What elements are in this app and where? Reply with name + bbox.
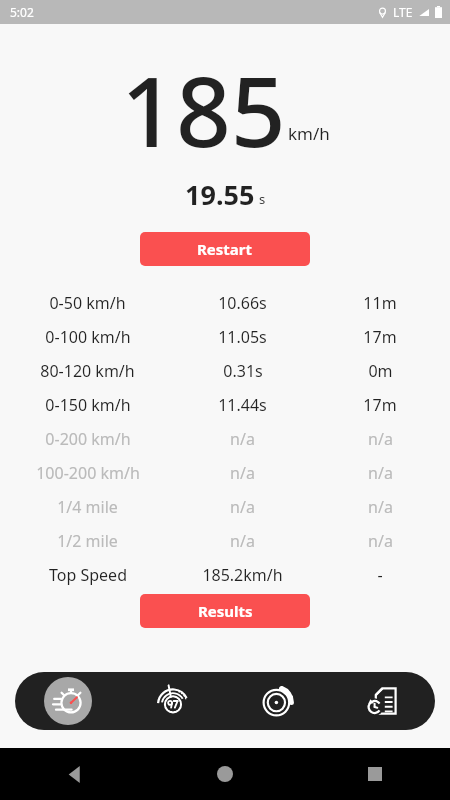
staticText: 17m	[363, 394, 397, 416]
button[interactable]: 0-100 km/h	[0, 320, 450, 354]
button[interactable]: 0-50 km/h	[0, 286, 450, 320]
staticText: 100-200 km/h	[36, 462, 140, 484]
staticText: Results	[198, 601, 253, 621]
staticText: 185.2km/h	[202, 564, 283, 586]
staticText: LTE	[393, 4, 413, 20]
button[interactable]: History	[330, 672, 435, 730]
staticText: 0.31s	[223, 360, 263, 382]
staticText: 1/4 mile	[57, 496, 118, 518]
staticText: n/a	[230, 462, 255, 484]
staticText: 0-50 km/h	[49, 292, 126, 314]
staticText: 11.05s	[218, 326, 267, 348]
staticText: km/h	[288, 122, 330, 145]
button[interactable]: Brakes	[225, 672, 330, 730]
staticText: 17m	[363, 326, 397, 348]
button[interactable]: Results	[140, 594, 310, 628]
staticText: 0-100 km/h	[45, 326, 131, 348]
button[interactable]: Stopwatch	[15, 672, 120, 730]
staticText: 1/2 mile	[57, 530, 118, 552]
button[interactable]: Home	[150, 748, 300, 800]
staticText: 0-200 km/h	[45, 428, 131, 450]
button[interactable]: 1/4 mile	[0, 490, 450, 524]
button[interactable]: Recent apps	[300, 748, 450, 800]
button[interactable]: Top Speed	[0, 558, 450, 592]
button[interactable]: Back	[0, 748, 150, 800]
staticText: 5:02	[10, 4, 34, 20]
staticText: s	[259, 190, 266, 208]
staticText: 0m	[368, 360, 393, 382]
button[interactable]: Restart	[140, 232, 310, 266]
staticText: n/a	[368, 530, 393, 552]
staticText: Top Speed	[49, 564, 127, 586]
staticText: 19.55	[185, 176, 255, 210]
staticText: 10.66s	[218, 292, 267, 314]
staticText: n/a	[368, 496, 393, 518]
staticText: 11.44s	[218, 394, 267, 416]
staticText: 0-150 km/h	[45, 394, 131, 416]
button[interactable]: 80-120 km/h	[0, 354, 450, 388]
staticText: n/a	[230, 530, 255, 552]
staticText: 185	[121, 44, 286, 154]
staticText: -	[377, 564, 383, 586]
button[interactable]: 0-150 km/h	[0, 388, 450, 422]
staticText: 80-120 km/h	[40, 360, 135, 382]
button[interactable]: 100-200 km/h	[0, 456, 450, 490]
staticText: n/a	[230, 428, 255, 450]
staticText: Restart	[197, 239, 253, 259]
button[interactable]: Speedometer	[120, 672, 225, 730]
staticText: n/a	[230, 496, 255, 518]
button[interactable]: 0-200 km/h	[0, 422, 450, 456]
button[interactable]: 1/2 mile	[0, 524, 450, 558]
staticText: n/a	[368, 462, 393, 484]
staticText: 11m	[363, 292, 397, 314]
staticText: n/a	[368, 428, 393, 450]
